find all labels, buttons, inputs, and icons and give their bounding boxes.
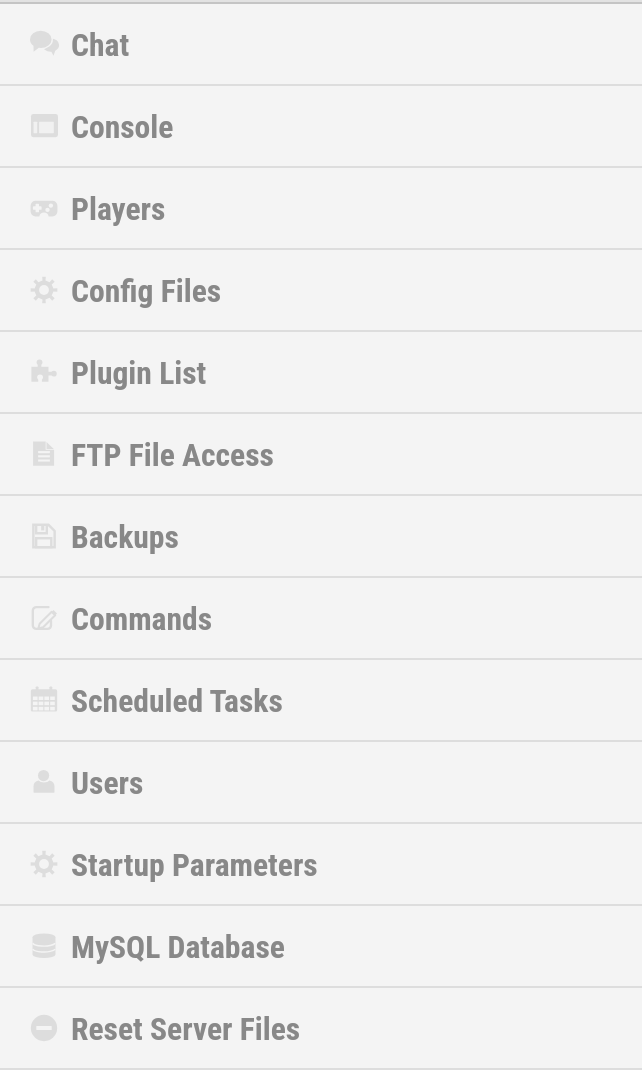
button[interactable]: Backups (0, 496, 642, 578)
staticText: FTP File Access (71, 437, 274, 474)
staticText: Plugin List (71, 355, 207, 392)
button[interactable]: FTP File Access (0, 414, 642, 496)
button[interactable]: Users (0, 742, 642, 824)
button[interactable]: Reset Server Files (0, 988, 642, 1070)
button[interactable]: Commands (0, 578, 642, 660)
staticText: Console (71, 109, 174, 146)
staticText: Users (71, 765, 144, 802)
staticText: Reset Server Files (71, 1011, 301, 1048)
staticText: Backups (71, 519, 179, 556)
button[interactable]: Players (0, 168, 642, 250)
button[interactable]: Config Files (0, 250, 642, 332)
button[interactable]: Scheduled Tasks (0, 660, 642, 742)
button[interactable]: Console (0, 86, 642, 168)
staticText: Config Files (71, 273, 222, 310)
button[interactable]: MySQL Database (0, 906, 642, 988)
button[interactable]: Plugin List (0, 332, 642, 414)
staticText: Commands (71, 601, 213, 638)
staticText: Players (71, 191, 166, 228)
button[interactable]: Chat (0, 4, 642, 86)
button[interactable]: Startup Parameters (0, 824, 642, 906)
staticText: Chat (71, 27, 130, 64)
staticText: Startup Parameters (71, 847, 318, 884)
staticText: Scheduled Tasks (71, 683, 283, 720)
staticText: MySQL Database (71, 929, 285, 966)
